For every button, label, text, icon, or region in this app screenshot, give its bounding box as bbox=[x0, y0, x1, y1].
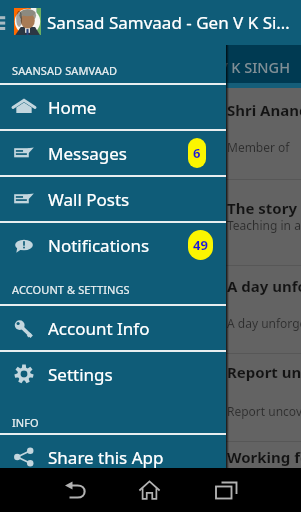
button[interactable]: Settings bbox=[0, 352, 226, 396]
button[interactable]: Report uncovers bbox=[0, 354, 301, 442]
staticText: INFO bbox=[12, 415, 39, 430]
button[interactable]: Home bbox=[112, 468, 186, 512]
button[interactable]: Account Info bbox=[0, 306, 226, 350]
button[interactable]: Open navigation drawer bbox=[0, 0, 14, 45]
staticText: Teaching in a Std. VIII bbox=[227, 217, 301, 233]
button[interactable]: Home bbox=[0, 85, 226, 129]
button[interactable]: Notifications bbox=[0, 223, 226, 267]
staticText: A day unforgettable bbox=[227, 315, 301, 331]
staticText: Messages bbox=[48, 142, 128, 165]
staticText: Report uncovers bbox=[227, 362, 301, 382]
button[interactable]: Shri Anand Kumar bbox=[0, 88, 301, 180]
staticText: 49 bbox=[193, 236, 208, 254]
button[interactable]: A day unforgettable bbox=[0, 266, 301, 354]
button[interactable]: The sto​ry of a lifetime bbox=[0, 180, 301, 266]
staticText: 6 bbox=[193, 144, 201, 162]
staticText: Account Info bbox=[48, 317, 150, 340]
staticText: Share this App bbox=[48, 446, 164, 469]
button[interactable]: Share this App bbox=[0, 435, 226, 479]
staticText: SAANSAD SAMVAAD bbox=[12, 63, 118, 78]
staticText: Settings bbox=[48, 363, 113, 386]
staticText: ACCOUNT & SETTINGS bbox=[12, 282, 130, 297]
staticText: Shri Anand Kumar bbox=[227, 100, 301, 120]
button[interactable]: Back bbox=[38, 468, 112, 512]
button[interactable]: Recent apps bbox=[189, 468, 263, 512]
staticText: Sansad Samvaad - Gen V K Si… bbox=[47, 11, 290, 34]
staticText: Notifications bbox=[48, 234, 150, 257]
button[interactable]: Wall Posts bbox=[0, 177, 226, 221]
staticText: Member of bbox=[227, 139, 290, 155]
staticText: GEN V K SINGH bbox=[185, 57, 291, 77]
staticText: A day unforgettable bbox=[227, 276, 301, 296]
staticText: Wall Posts bbox=[48, 188, 130, 211]
staticText: Working for the Public bbox=[227, 447, 301, 467]
staticText: Home bbox=[48, 96, 97, 119]
staticText: The sto​ry of a lifetime bbox=[227, 198, 301, 218]
button[interactable]: Messages bbox=[0, 131, 226, 175]
button[interactable]: Working for the Public bbox=[0, 442, 301, 512]
staticText: Report uncovers bbox=[227, 403, 301, 419]
